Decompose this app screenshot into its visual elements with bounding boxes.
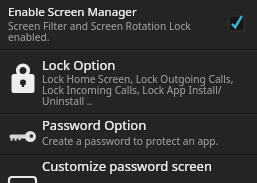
staticText: Enable Screen Manager [8, 4, 137, 20]
button[interactable] [0, 115, 257, 154]
staticText: Screen Filter and Screen Rotation Lock e… [8, 19, 191, 44]
button[interactable] [0, 156, 257, 183]
staticText: Lock Home Screen, Lock Outgoing Calls, L… [42, 72, 234, 108]
staticText: Lock Option [42, 56, 116, 74]
staticText: Customize password screen [42, 157, 212, 175]
button[interactable] [226, 11, 248, 35]
staticText: Password Option [42, 116, 147, 134]
button[interactable] [0, 0, 257, 49]
staticText: Create a password to protect an app. [42, 134, 219, 148]
button[interactable] [0, 51, 257, 113]
